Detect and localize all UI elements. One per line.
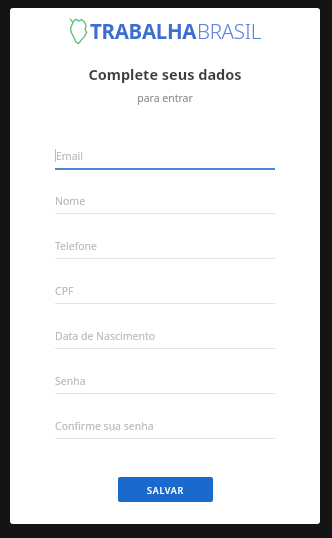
button[interactable]: CPF (55, 274, 275, 319)
staticText: Data de Nascimento (55, 329, 156, 343)
staticText: SALVAR (147, 484, 185, 496)
button[interactable]: Data de Nascimento (55, 319, 275, 364)
staticText: TRABALHA (90, 17, 197, 45)
staticText: Confirme sua senha (55, 419, 154, 433)
button[interactable]: Telefone (55, 229, 275, 274)
button[interactable]: Nome (55, 184, 275, 229)
staticText: Telefone (55, 239, 98, 253)
staticText: Senha (55, 374, 86, 388)
button[interactable]: Email (55, 139, 275, 184)
button[interactable]: Senha (55, 364, 275, 409)
staticText: CPF (55, 284, 74, 298)
staticText: BRASIL (197, 17, 262, 45)
staticText: para entrar (10, 91, 320, 105)
staticText: Email (56, 149, 83, 163)
button[interactable]: SALVAR (118, 477, 213, 502)
staticText: Nome (55, 194, 86, 208)
staticText: Complete seus dados (10, 64, 320, 84)
button[interactable]: Confirme sua senha (55, 409, 275, 454)
